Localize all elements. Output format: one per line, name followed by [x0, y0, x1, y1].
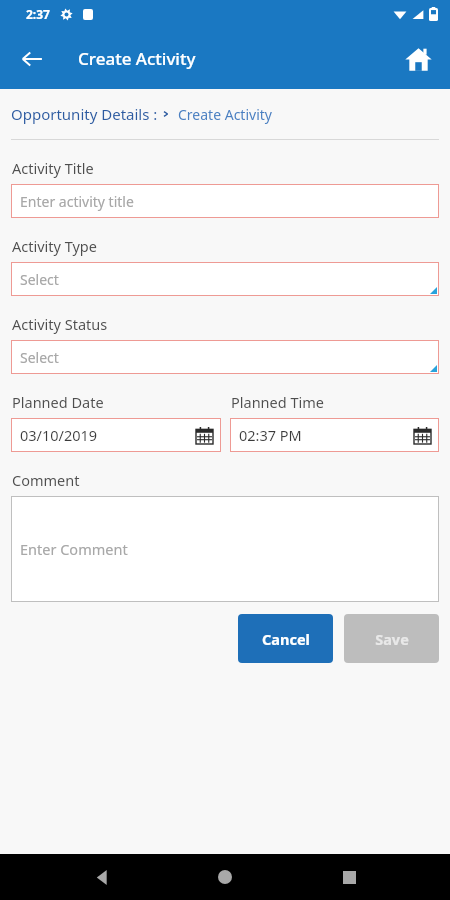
staticText: Comment [12, 470, 80, 490]
staticText: Select [20, 348, 59, 367]
staticText: Create Activity [78, 47, 196, 70]
button[interactable]: Enter activity title [11, 184, 439, 218]
staticText: 03/10/2019 [20, 425, 98, 445]
button[interactable]: Enter Comment [11, 496, 439, 602]
staticText: 02:37 PM [239, 425, 302, 445]
button[interactable]: Home [203, 855, 247, 899]
button[interactable]: Home [398, 39, 438, 79]
staticText: Activity Status [12, 314, 108, 334]
button[interactable]: 02:37 PM [230, 418, 439, 452]
button[interactable]: Open picker [193, 424, 215, 446]
staticText: Activity Type [12, 236, 97, 256]
button[interactable]: Opportunity Details : [11, 104, 158, 124]
staticText: Save [375, 629, 409, 649]
staticText: Create Activity [178, 105, 272, 124]
button[interactable]: Back [12, 39, 52, 79]
staticText: Activity Title [12, 158, 94, 178]
button[interactable]: Open picker [411, 424, 433, 446]
staticText: Opportunity Details : [11, 104, 158, 124]
staticText: Planned Time [231, 392, 324, 412]
button[interactable]: Back [80, 855, 124, 899]
staticText: 2:37 [26, 6, 50, 22]
staticText: Enter activity title [20, 192, 134, 211]
button[interactable]: Recents [327, 855, 371, 899]
button[interactable]: Cancel [238, 614, 333, 663]
button[interactable]: Select [11, 262, 439, 296]
button[interactable]: 03/10/2019 [11, 418, 221, 452]
button[interactable]: Select [11, 340, 439, 374]
button[interactable]: Save [344, 614, 439, 663]
button[interactable]: Create Activity [178, 105, 272, 124]
staticText: Cancel [262, 629, 310, 649]
staticText: Enter Comment [20, 539, 128, 559]
staticText: Planned Date [12, 392, 104, 412]
staticText: Select [20, 270, 59, 289]
